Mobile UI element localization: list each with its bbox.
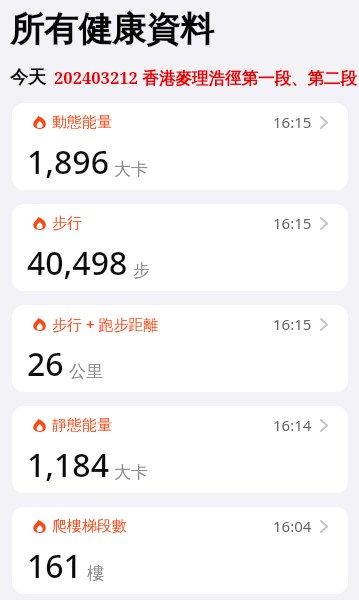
staticText: 16:15 <box>273 112 312 132</box>
staticText: 大卡 <box>114 462 148 483</box>
button[interactable]: 靜態能量 <box>12 406 348 493</box>
staticText: 16:04 <box>273 516 312 536</box>
staticText: 26 <box>27 342 64 386</box>
staticText: 202403212 香港麥理浩徑第一段、第二段 <box>54 66 357 89</box>
staticText: 樓 <box>87 563 104 584</box>
staticText: 16:14 <box>273 415 312 435</box>
staticText: 步行 + 跑步距離 <box>52 314 159 334</box>
button[interactable]: 爬樓梯段數 <box>12 507 348 594</box>
staticText: 1,896 <box>27 140 109 184</box>
staticText: 動態能量 <box>52 113 112 132</box>
staticText: 16:15 <box>273 213 312 233</box>
staticText: 大卡 <box>114 159 148 180</box>
staticText: 靜態能量 <box>52 416 112 435</box>
staticText: 步 <box>133 260 150 281</box>
staticText: 今天 <box>10 66 46 89</box>
button[interactable]: 步行 <box>12 204 348 291</box>
staticText: 1,184 <box>27 443 109 487</box>
staticText: 40,498 <box>27 241 128 285</box>
staticText: 公里 <box>69 361 103 382</box>
button[interactable]: 步行 + 跑步距離 <box>12 305 348 392</box>
staticText: 16:15 <box>273 314 312 334</box>
button[interactable]: 動態能量 <box>12 103 348 190</box>
staticText: 所有健康資料 <box>10 8 214 51</box>
staticText: 161 <box>27 544 82 588</box>
staticText: 爬樓梯段數 <box>52 517 127 536</box>
staticText: 步行 <box>52 214 82 233</box>
